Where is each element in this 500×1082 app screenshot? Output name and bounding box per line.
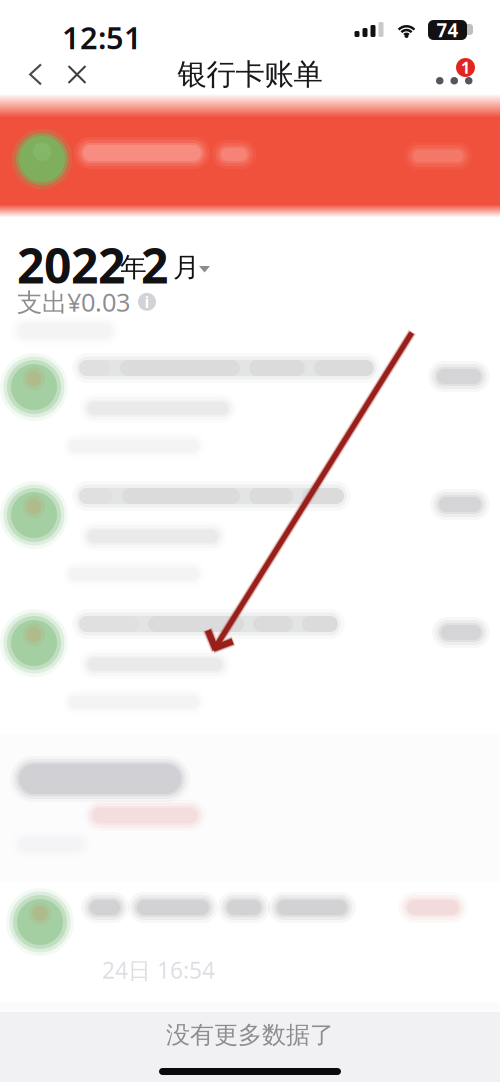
button[interactable] xyxy=(0,606,500,734)
button[interactable]: More options xyxy=(430,56,484,93)
staticText: 12:51 xyxy=(62,17,142,58)
button[interactable] xyxy=(0,350,500,478)
staticText: 没有更多数据了 xyxy=(166,1020,334,1050)
staticText: 74 xyxy=(436,18,458,42)
button[interactable]: Close xyxy=(58,56,96,93)
staticText: 月 xyxy=(173,251,200,284)
button[interactable]: Back xyxy=(16,56,54,93)
staticText: 24日 16:54 xyxy=(102,955,215,985)
button[interactable]: 24日 16:54 xyxy=(0,882,500,1002)
staticText: 支出¥0.03 xyxy=(17,285,130,319)
staticText: 2022 xyxy=(17,233,125,297)
staticText: 年 xyxy=(120,251,147,284)
staticText: 银行卡账单 xyxy=(177,56,322,92)
staticText: 1 xyxy=(461,57,470,78)
button[interactable] xyxy=(0,478,500,606)
staticText: i xyxy=(144,291,149,312)
staticText: 2 xyxy=(141,233,168,297)
